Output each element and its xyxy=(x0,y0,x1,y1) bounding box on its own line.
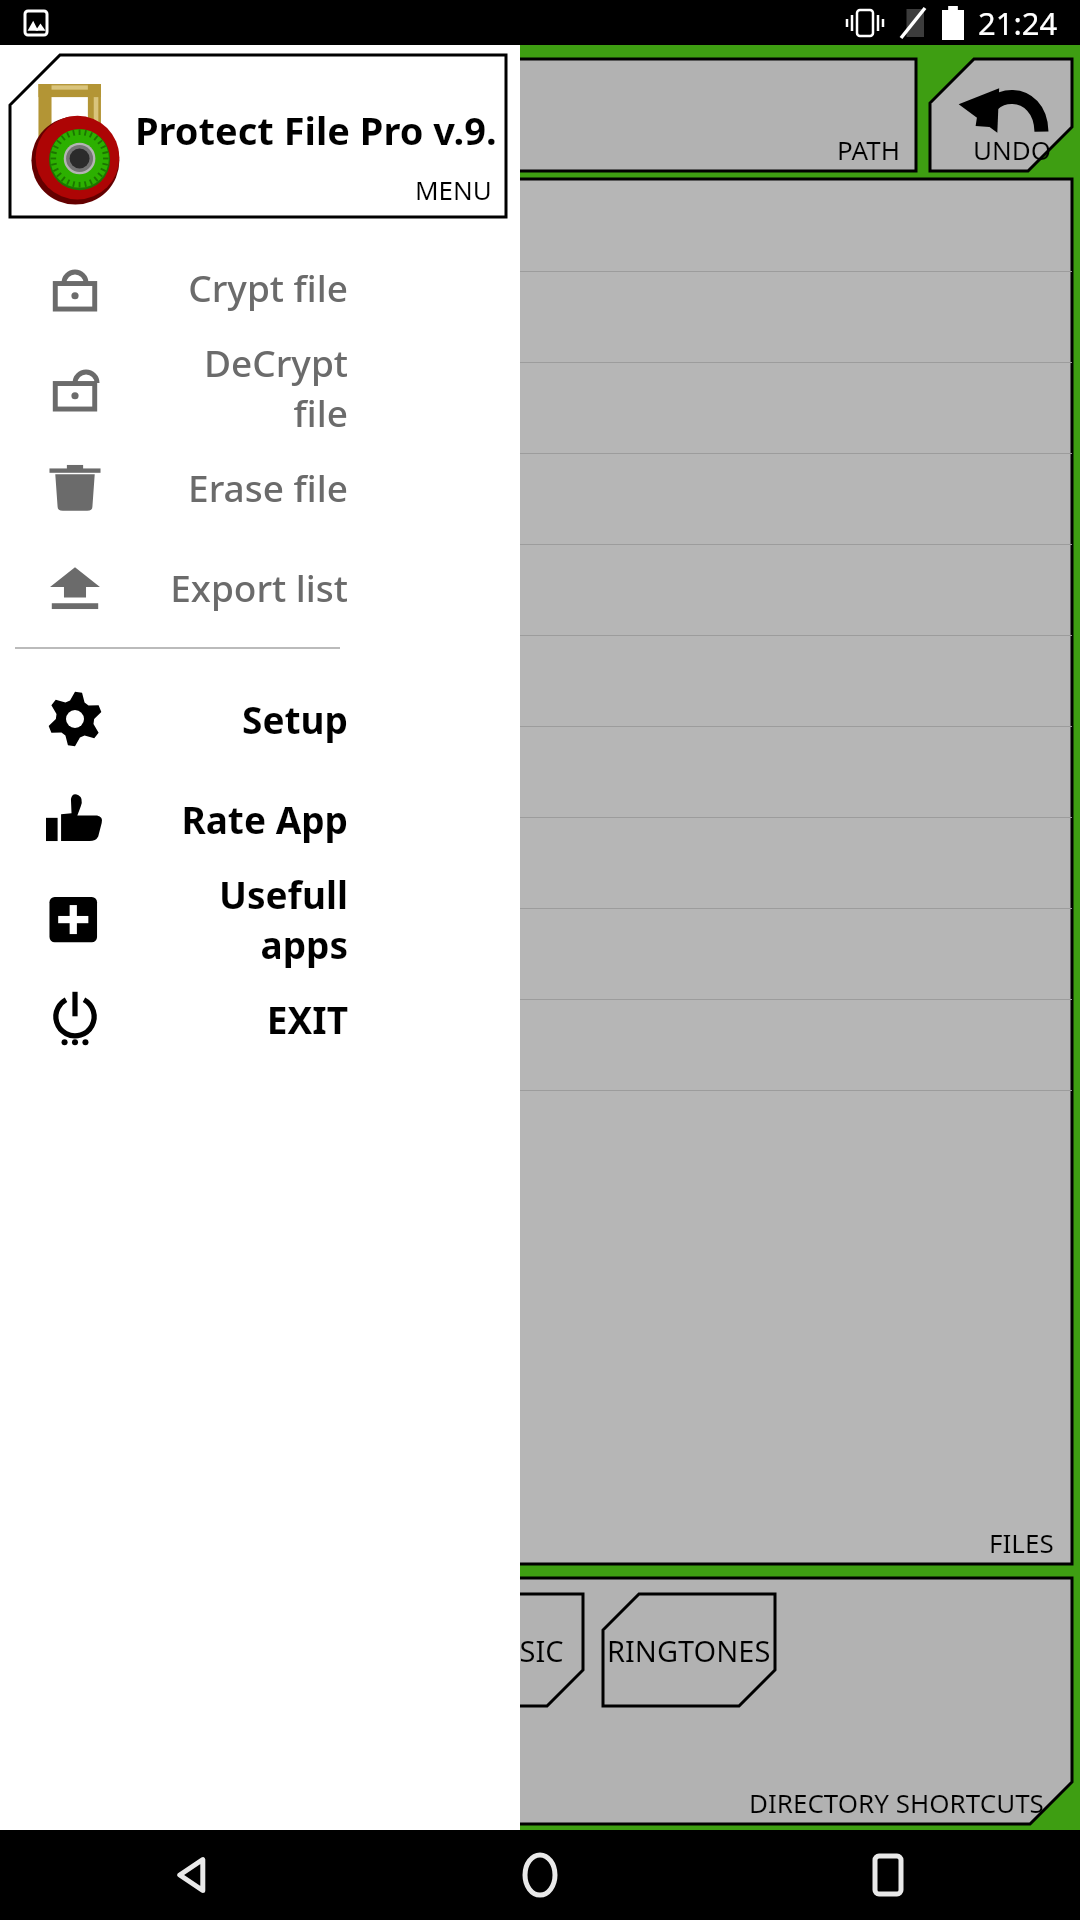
button[interactable] xyxy=(8,1000,1072,1091)
staticText: Usefull apps xyxy=(150,869,348,969)
staticText: RINGTONES xyxy=(607,1631,771,1670)
button[interactable]: Erase file xyxy=(0,437,520,537)
staticText: DIRECTORY SHORTCUTS xyxy=(749,1785,1044,1820)
button[interactable] xyxy=(8,1091,1072,1182)
staticText: Crypt file xyxy=(188,262,348,312)
staticText: Erase file xyxy=(188,462,348,512)
button[interactable]: Setup xyxy=(0,669,520,769)
button[interactable]: Home xyxy=(503,1838,577,1912)
button[interactable] xyxy=(8,727,1072,818)
button[interactable]: Crypt file xyxy=(0,237,520,337)
button[interactable]: Recent apps xyxy=(851,1838,925,1912)
staticText: PlayerFree xyxy=(36,568,205,614)
button[interactable]: Back xyxy=(155,1838,229,1912)
staticText: PATH xyxy=(837,132,900,167)
button[interactable]: Bicycle xyxy=(8,363,1072,454)
button[interactable] xyxy=(8,909,1072,1000)
button[interactable]: EXIT xyxy=(0,969,520,1069)
button[interactable]: AudioRecorder xyxy=(8,181,1072,272)
staticText: AudioRecorder xyxy=(36,204,274,250)
staticText: FILES xyxy=(989,1525,1054,1560)
button[interactable]: PATH xyxy=(8,59,916,171)
staticText: DeCrypt file xyxy=(150,337,348,437)
staticText: UNDO xyxy=(973,132,1052,167)
staticText: Bicycle xyxy=(36,386,145,432)
button[interactable]: Undo xyxy=(930,59,1072,171)
button[interactable]: PlayerFree xyxy=(8,545,1072,636)
button[interactable]: MUSIC xyxy=(453,1594,583,1706)
staticText: Rate App xyxy=(181,794,348,844)
staticText: Protect File Pro v.9. xyxy=(135,104,497,156)
button[interactable]: DeCrypt file xyxy=(0,337,520,437)
button[interactable] xyxy=(8,636,1072,727)
button[interactable] xyxy=(8,272,1072,363)
button[interactable]: RINGTONES xyxy=(603,1594,775,1706)
staticText: Export list xyxy=(170,562,348,612)
button[interactable] xyxy=(8,818,1072,909)
staticText: MENU xyxy=(415,172,492,207)
button[interactable]: Protect File Pro v.9. xyxy=(10,55,506,217)
button[interactable]: Usefull apps xyxy=(0,869,520,969)
staticText: EXIT xyxy=(266,994,348,1044)
button[interactable]: Rate App xyxy=(0,769,520,869)
staticText: Setup xyxy=(242,694,348,744)
button[interactable]: Export list xyxy=(0,537,520,637)
staticText: 21:24 xyxy=(978,2,1058,44)
button[interactable] xyxy=(8,454,1072,545)
staticText: MUSIC xyxy=(472,1631,564,1670)
